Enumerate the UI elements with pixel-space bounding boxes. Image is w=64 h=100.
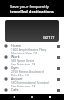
staticText: Save your frequently bbox=[10, 4, 49, 9]
button[interactable]: Back bbox=[10, 94, 18, 100]
staticText: Cafe bbox=[11, 87, 19, 92]
staticText: travelled destinations bbox=[10, 9, 54, 14]
staticText: GOT IT bbox=[43, 35, 55, 40]
staticText: San Francisco, CA bbox=[11, 63, 36, 65]
button[interactable]: Work bbox=[0, 53, 64, 64]
staticText: SFO International Terminal bbox=[11, 81, 49, 85]
button[interactable]: Gym bbox=[0, 64, 64, 75]
button[interactable]: Recents bbox=[46, 94, 54, 100]
button[interactable]: Save bbox=[55, 54, 61, 60]
button[interactable]: Save bbox=[55, 76, 61, 82]
button[interactable]: Save bbox=[55, 65, 61, 71]
staticText: 1600 Amphitheatre Pkwy bbox=[11, 48, 47, 52]
button[interactable]: Save bbox=[55, 43, 61, 49]
staticText: Gym bbox=[11, 65, 19, 70]
button[interactable]: GOT IT bbox=[42, 35, 56, 40]
button[interactable]: Save bbox=[55, 87, 61, 93]
staticText: Airport bbox=[11, 76, 23, 81]
staticText: Mountain View, CA bbox=[11, 52, 38, 54]
staticText: Home bbox=[11, 43, 21, 48]
staticText: Palo Alto, CA bbox=[11, 74, 29, 76]
button[interactable]: Home bbox=[28, 94, 36, 100]
staticText: 2100 Fitness Boulevard bbox=[11, 70, 44, 74]
staticText: Work bbox=[11, 54, 20, 59]
button[interactable]: Cafe bbox=[0, 86, 64, 94]
button[interactable]: GOT IT bbox=[5, 20, 59, 42]
staticText: 345 Spear Street bbox=[11, 59, 35, 63]
button[interactable]: Home bbox=[0, 42, 64, 53]
button[interactable]: Airport bbox=[0, 75, 64, 86]
staticText: San Francisco, CA bbox=[11, 85, 36, 87]
